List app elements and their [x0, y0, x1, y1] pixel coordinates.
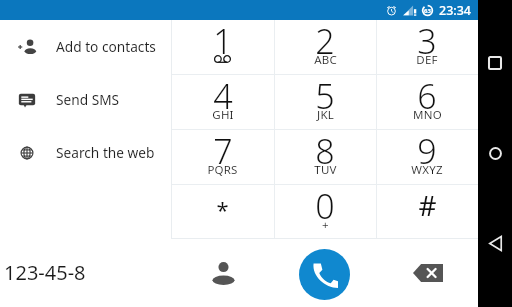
- staticText: *: [216, 194, 229, 224]
- button[interactable]: Call: [299, 249, 350, 300]
- staticText: TUV: [314, 162, 337, 178]
- button[interactable]: Home: [483, 141, 507, 165]
- button[interactable]: #: [376, 185, 478, 239]
- staticText: ABC: [314, 52, 337, 68]
- button[interactable]: Back: [483, 231, 507, 255]
- button[interactable]: 7: [171, 130, 274, 184]
- button[interactable]: Backspace: [405, 250, 451, 296]
- button[interactable]: 2: [274, 20, 376, 74]
- staticText: 23:34: [439, 2, 472, 19]
- staticText: 4: [213, 73, 233, 119]
- button[interactable]: 6: [376, 75, 478, 129]
- staticText: Add to contacts: [56, 37, 156, 56]
- button[interactable]: *: [171, 185, 274, 239]
- button[interactable]: Add contact: [200, 250, 246, 296]
- staticText: 2: [315, 18, 335, 64]
- staticText: GHI: [212, 107, 234, 123]
- staticText: 7: [213, 128, 233, 174]
- staticText: JKL: [317, 107, 334, 123]
- button[interactable]: Search the web: [0, 126, 171, 179]
- staticText: 6: [417, 73, 437, 119]
- button[interactable]: 9: [376, 130, 478, 184]
- staticText: 1: [213, 18, 233, 64]
- button[interactable]: 3: [376, 20, 478, 74]
- staticText: 123-45-8: [4, 259, 86, 286]
- staticText: 63: [424, 7, 431, 15]
- button[interactable]: 4: [171, 75, 274, 129]
- staticText: #: [418, 186, 437, 224]
- button[interactable]: Add to contacts: [0, 20, 171, 73]
- staticText: MNO: [413, 107, 442, 123]
- staticText: PQRS: [207, 162, 238, 178]
- button[interactable]: Send SMS: [0, 73, 171, 126]
- button[interactable]: 1: [171, 20, 274, 74]
- staticText: WXYZ: [411, 162, 443, 178]
- staticText: DEF: [416, 52, 438, 68]
- staticText: Search the web: [56, 143, 155, 162]
- staticText: 3: [417, 18, 437, 64]
- button[interactable]: 5: [274, 75, 376, 129]
- staticText: Send SMS: [56, 90, 120, 109]
- staticText: 9: [417, 128, 437, 174]
- staticText: 0: [315, 183, 335, 229]
- button[interactable]: 8: [274, 130, 376, 184]
- staticText: 8: [315, 128, 335, 174]
- button[interactable]: 0: [274, 185, 376, 239]
- staticText: 5: [315, 73, 335, 119]
- button[interactable]: Recents: [483, 51, 507, 75]
- staticText: +: [322, 217, 329, 233]
